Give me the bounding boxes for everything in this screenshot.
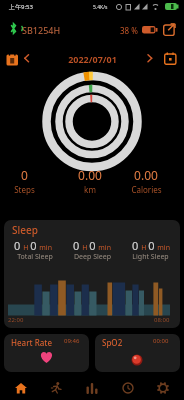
button[interactable]: Sleep — [4, 220, 180, 328]
button[interactable] — [164, 52, 177, 65]
button[interactable] — [41, 376, 71, 400]
button[interactable] — [23, 54, 31, 63]
staticText: 08:00 — [154, 316, 170, 324]
staticText: 0.00 — [134, 167, 158, 183]
button[interactable] — [163, 22, 177, 36]
staticText: 2022/07/01 — [68, 53, 117, 65]
staticText: SpO2 — [102, 337, 123, 348]
button[interactable] — [6, 53, 19, 66]
staticText: km — [84, 184, 96, 195]
staticText: Deep Sleep — [74, 252, 111, 262]
staticText: 38 % — [120, 25, 138, 36]
staticText: 09:46 — [64, 337, 80, 345]
button[interactable]: SB1254H — [0, 0, 39, 12]
button[interactable] — [146, 54, 154, 63]
button[interactable]: Heart Rate — [4, 334, 89, 372]
button[interactable] — [113, 376, 143, 400]
button[interactable]: SpO2 — [95, 334, 180, 372]
staticText: Total Sleep — [17, 252, 53, 262]
staticText: 0 H 0 min — [73, 238, 111, 253]
staticText: 00:00 — [153, 337, 169, 345]
staticText: 5.4K/s — [93, 4, 108, 11]
button[interactable] — [7, 22, 19, 35]
staticText: Light Sleep — [132, 252, 169, 262]
staticText: 22:00 — [8, 316, 24, 324]
staticText: Heart Rate — [11, 337, 52, 348]
button[interactable] — [77, 376, 107, 400]
staticText: 0 H 0 min — [132, 238, 170, 253]
staticText: 上午9:53 — [9, 3, 33, 11]
staticText: 0.00 — [78, 167, 102, 183]
button[interactable] — [148, 376, 178, 400]
staticText: 0 — [21, 167, 28, 183]
staticText: 0 H 0 min — [14, 238, 52, 253]
staticText: Calories — [131, 184, 162, 195]
button[interactable] — [6, 376, 36, 400]
staticText: Steps — [14, 184, 35, 195]
staticText: Sleep — [12, 223, 38, 237]
